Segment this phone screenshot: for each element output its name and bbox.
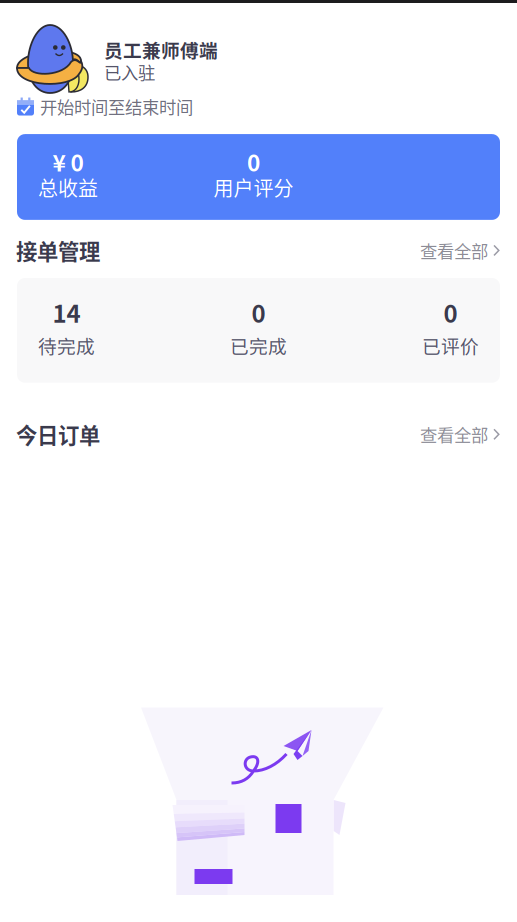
staticText: 今日订单 (16, 419, 100, 450)
staticText: 员工兼师傅端 (104, 36, 218, 63)
staticText: 已评价 (422, 332, 479, 359)
button[interactable]: 查看全部 (420, 235, 501, 266)
staticText: 0 (247, 145, 260, 178)
staticText: 14 (52, 295, 80, 330)
staticText: 0 (443, 295, 457, 330)
staticText: 总收益 (38, 173, 98, 202)
staticText: 0 (251, 295, 265, 330)
staticText: 待完成 (38, 332, 95, 359)
staticText: 已入驻 (104, 59, 155, 84)
button[interactable]: 查看全部 (420, 419, 501, 450)
staticText: 查看全部 (420, 238, 488, 263)
staticText: 用户评分 (213, 173, 293, 202)
staticText: 查看全部 (420, 422, 488, 447)
staticText: ¥ 0 (52, 145, 83, 178)
staticText: 开始时间至结束时间 (40, 94, 193, 119)
staticText: 已完成 (230, 332, 287, 359)
staticText: 接单管理 (16, 235, 100, 266)
